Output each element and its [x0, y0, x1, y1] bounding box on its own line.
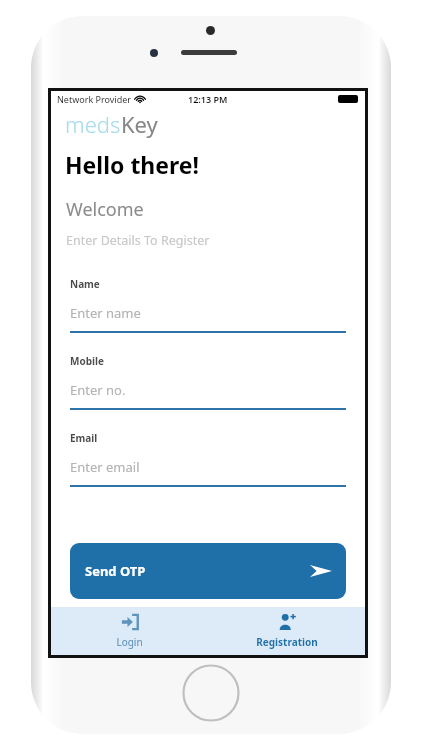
staticText: Hello there! — [65, 149, 200, 180]
button[interactable]: Send OTP — [70, 543, 346, 599]
button[interactable]: Enter no. — [70, 381, 346, 399]
staticText: Login — [116, 635, 143, 649]
staticText: Welcome — [66, 197, 144, 222]
button[interactable]: Registration — [208, 607, 365, 655]
staticText: Enter email — [70, 458, 140, 476]
other: Registration — [278, 613, 296, 631]
staticText: Key — [121, 109, 158, 139]
button[interactable]: Enter name — [70, 304, 346, 322]
staticText: Registration — [256, 635, 318, 649]
button[interactable]: Enter email — [70, 458, 346, 476]
staticText: Enter name — [70, 304, 141, 322]
staticText: Enter no. — [70, 381, 126, 399]
other: Login — [121, 613, 139, 631]
staticText: Send OTP — [85, 562, 146, 580]
staticText: meds — [65, 109, 121, 139]
staticText: Enter Details To Register — [66, 232, 210, 249]
staticText: Email — [70, 431, 98, 445]
staticText: Name — [70, 277, 100, 291]
staticText: 12:13 PM — [188, 93, 228, 105]
staticText: Mobile — [70, 354, 104, 368]
button[interactable]: Login — [51, 607, 208, 655]
staticText: Network Provider — [57, 93, 132, 105]
